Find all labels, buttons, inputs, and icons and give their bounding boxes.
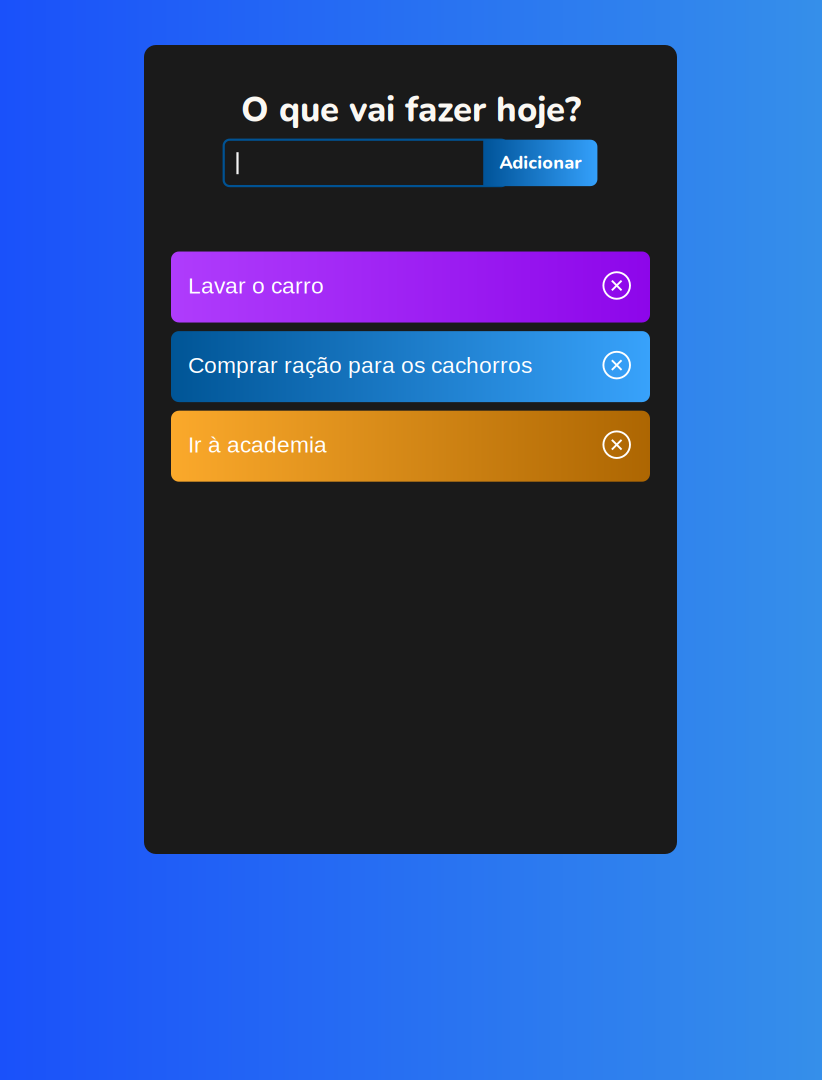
button[interactable]: Adicionar — [483, 140, 597, 186]
staticText: Lavar o carro — [188, 273, 324, 298]
staticText: O que vai fazer hoje? — [241, 86, 581, 134]
button[interactable]: Ir à academia — [171, 411, 650, 482]
button[interactable]: Comprar ração para os cachorros — [171, 331, 650, 402]
staticText: Adicionar — [499, 151, 581, 175]
button[interactable]: Lavar o carro — [171, 251, 650, 322]
staticText: Ir à academia — [188, 432, 327, 457]
staticText: Comprar ração para os cachorros — [188, 352, 532, 378]
